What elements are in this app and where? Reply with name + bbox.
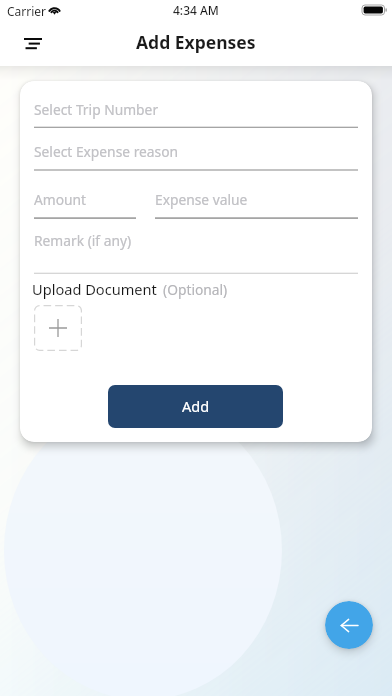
button[interactable]: Expense value bbox=[155, 190, 358, 219]
button[interactable]: Add bbox=[108, 385, 283, 428]
staticText: Add Expenses bbox=[136, 30, 256, 54]
button[interactable]: Select Expense reason bbox=[34, 142, 358, 171]
staticText: Remark (if any) bbox=[34, 231, 132, 250]
staticText: Expense value bbox=[155, 190, 248, 209]
staticText: Carrier bbox=[7, 3, 47, 19]
button[interactable]: Back bbox=[325, 601, 373, 649]
staticText: Select Trip Number bbox=[34, 100, 159, 119]
button[interactable]: Menu bbox=[12, 22, 54, 64]
staticText: Add bbox=[182, 396, 210, 416]
staticText: 4:34 AM bbox=[173, 2, 219, 18]
staticText: (Optional) bbox=[163, 280, 228, 299]
button[interactable]: Upload document bbox=[34, 305, 82, 351]
staticText: Upload Document bbox=[32, 279, 157, 299]
button[interactable]: Remark (if any) bbox=[34, 231, 358, 275]
button[interactable]: Select Trip Number bbox=[34, 100, 358, 129]
button[interactable]: Amount bbox=[34, 190, 136, 219]
staticText: Select Expense reason bbox=[34, 142, 179, 161]
staticText: Amount bbox=[34, 190, 87, 209]
